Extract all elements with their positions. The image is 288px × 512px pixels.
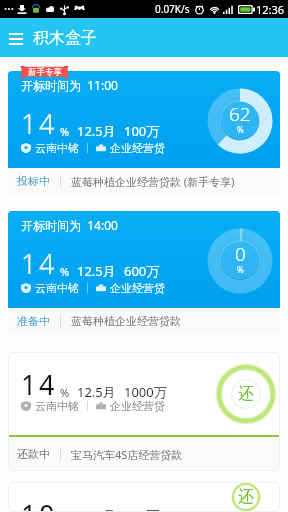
- staticText: 12.5月: [77, 262, 116, 280]
- staticText: 蓝莓种植企业经营贷款 (新手专享): [71, 174, 235, 189]
- staticText: 云南中铭: [35, 281, 79, 295]
- staticText: 蓝莓种植企业经营贷款: [71, 314, 181, 328]
- staticText: 12.5月: [77, 383, 116, 401]
- staticText: 1000万: [124, 383, 167, 401]
- staticText: %: [237, 264, 244, 275]
- staticText: 0.07K/s: [155, 2, 190, 16]
- staticText: 100万: [124, 122, 160, 140]
- button[interactable]: Menu: [0, 18, 31, 57]
- staticText: 云南中铭: [35, 399, 79, 413]
- staticText: 云南中铭: [35, 141, 79, 155]
- staticText: 14: [21, 105, 57, 142]
- staticText: %: [60, 508, 70, 512]
- staticText: 600万: [124, 262, 160, 280]
- staticText: 开标时间为 14:00: [21, 217, 118, 233]
- staticText: 投标中: [17, 174, 50, 188]
- staticText: 14: [21, 366, 57, 403]
- staticText: 积木盒子: [33, 28, 97, 48]
- button[interactable]: 10: [8, 482, 280, 512]
- staticText: 12.5月: [77, 506, 116, 512]
- button[interactable]: 还款: [215, 363, 277, 425]
- staticText: %: [237, 124, 244, 135]
- button[interactable]: 还款: [215, 482, 277, 512]
- staticText: 62: [229, 101, 251, 127]
- staticText: 开标时间为 11:00: [21, 77, 118, 93]
- button[interactable]: 开标时间为 14:00: [8, 211, 280, 334]
- staticText: 还: [238, 384, 254, 404]
- staticText: %: [60, 264, 70, 279]
- staticText: 新手专享: [28, 67, 62, 78]
- staticText: 还款中: [17, 447, 50, 461]
- staticText: 企业经营贷: [110, 399, 165, 413]
- staticText: 800万: [124, 506, 160, 512]
- staticText: 12.5月: [77, 122, 116, 140]
- staticText: 10: [21, 496, 57, 512]
- staticText: 12:36: [256, 2, 285, 17]
- staticText: 企业经营贷: [110, 141, 165, 155]
- staticText: 宝马汽车4S店经营贷款: [71, 447, 183, 462]
- staticText: 0: [235, 241, 246, 267]
- staticText: %: [60, 385, 70, 400]
- button[interactable]: 14: [8, 352, 280, 471]
- staticText: 企业经营贷: [110, 281, 165, 295]
- staticText: %: [60, 124, 70, 139]
- staticText: 准备中: [17, 314, 50, 328]
- staticText: 还: [238, 487, 254, 507]
- staticText: 14: [21, 245, 57, 282]
- button[interactable]: 开标时间为 11:00: [8, 71, 280, 194]
